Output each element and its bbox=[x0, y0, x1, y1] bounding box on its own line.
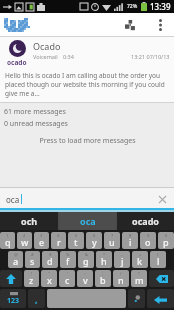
staticText: oca bbox=[6, 194, 20, 205]
button[interactable]: ocado bbox=[117, 212, 174, 230]
staticText: 1 bbox=[6, 233, 9, 238]
staticText: i bbox=[129, 236, 132, 248]
staticText: 3 bbox=[40, 233, 43, 238]
button[interactable]: Emoji bbox=[128, 289, 145, 308]
staticText: 13:39 bbox=[150, 1, 171, 12]
staticText: 2 bbox=[23, 233, 26, 238]
button[interactable]: Symbols bbox=[0, 289, 26, 308]
staticText: 0 unread messages bbox=[4, 119, 68, 129]
button[interactable]: ! bbox=[24, 270, 39, 287]
button[interactable]: Refresh bbox=[120, 15, 140, 35]
staticText: 6 bbox=[93, 233, 96, 238]
button[interactable]: @ bbox=[8, 251, 23, 268]
staticText: s bbox=[30, 255, 35, 267]
button[interactable]: 4 bbox=[51, 232, 66, 249]
button[interactable]: $ bbox=[42, 251, 58, 268]
staticText: $ bbox=[49, 252, 52, 257]
staticText: & bbox=[85, 252, 88, 257]
staticText: c bbox=[65, 274, 70, 286]
staticText: / bbox=[120, 271, 122, 276]
staticText: # bbox=[31, 252, 34, 257]
button[interactable]: oca bbox=[59, 212, 116, 230]
button[interactable]: - bbox=[114, 251, 130, 268]
button[interactable]: Press to load more messages bbox=[0, 136, 174, 146]
button[interactable]: : bbox=[77, 270, 93, 287]
staticText: y bbox=[92, 236, 97, 248]
staticText: 9 bbox=[147, 233, 150, 238]
staticText: , bbox=[35, 293, 38, 305]
staticText: oca bbox=[80, 215, 96, 227]
staticText: p bbox=[163, 236, 169, 248]
staticText: - bbox=[121, 252, 123, 257]
button[interactable]: 6 bbox=[86, 232, 102, 249]
staticText: Ocado bbox=[33, 40, 61, 52]
button[interactable]: / bbox=[113, 270, 129, 287]
staticText: Hello this is ocado I am calling about t… bbox=[5, 71, 169, 98]
staticText: 13:21 07/10/13 bbox=[131, 53, 170, 60]
staticText: ? bbox=[138, 271, 140, 276]
staticText: 4 bbox=[57, 233, 60, 238]
staticText: Press to load more messages bbox=[39, 136, 136, 146]
button[interactable]: + bbox=[132, 251, 148, 268]
button[interactable]: Clear bbox=[156, 193, 168, 205]
staticText: 61 more messages bbox=[4, 107, 66, 117]
button[interactable]: ocado bbox=[0, 37, 174, 103]
staticText: r bbox=[57, 236, 61, 248]
staticText: o bbox=[145, 236, 151, 248]
staticText: ' bbox=[67, 271, 68, 276]
staticText: : bbox=[84, 271, 86, 276]
staticText: 0:34 bbox=[63, 53, 74, 60]
button[interactable]: % bbox=[60, 251, 76, 268]
button[interactable]: 3 bbox=[34, 232, 49, 249]
button[interactable]: Enter bbox=[147, 289, 174, 308]
button[interactable]: # bbox=[25, 251, 40, 268]
button[interactable]: & bbox=[78, 251, 94, 268]
staticText: j bbox=[121, 255, 124, 267]
staticText: l bbox=[157, 255, 160, 267]
button[interactable]: ; bbox=[95, 270, 111, 287]
staticText: n bbox=[118, 274, 124, 286]
staticText: " bbox=[48, 271, 50, 276]
button[interactable]: More options bbox=[150, 15, 170, 35]
staticText: 7 bbox=[111, 233, 114, 238]
staticText: d bbox=[47, 255, 53, 267]
staticText: h bbox=[101, 255, 107, 267]
staticText: ( bbox=[157, 252, 159, 257]
staticText: w bbox=[21, 236, 29, 248]
button[interactable]: 7 bbox=[104, 232, 120, 249]
button[interactable]: 1 bbox=[0, 232, 15, 249]
staticText: ! bbox=[31, 271, 33, 276]
staticText: * bbox=[103, 252, 106, 257]
button[interactable]: * bbox=[96, 251, 112, 268]
staticText: t bbox=[74, 236, 78, 248]
staticText: ; bbox=[102, 271, 104, 276]
staticText: 8 bbox=[129, 233, 132, 238]
button[interactable]: oca bbox=[0, 188, 174, 210]
button[interactable]: Space bbox=[47, 289, 126, 308]
button[interactable]: 9 bbox=[140, 232, 156, 249]
staticText: ocado bbox=[132, 215, 159, 227]
button[interactable]: Delete bbox=[149, 270, 174, 287]
button[interactable]: ( bbox=[150, 251, 166, 268]
staticText: a bbox=[13, 255, 19, 267]
staticText: Voicemail bbox=[33, 53, 58, 60]
staticText: % bbox=[66, 252, 70, 257]
button[interactable]: " bbox=[41, 270, 57, 287]
staticText: + bbox=[139, 252, 142, 257]
button[interactable]: ' bbox=[59, 270, 75, 287]
button[interactable]: 0 bbox=[158, 232, 174, 249]
staticText: m bbox=[135, 274, 144, 286]
button[interactable]: Shift bbox=[0, 270, 22, 287]
button[interactable]: 2 bbox=[17, 232, 32, 249]
staticText: f bbox=[66, 255, 70, 267]
staticText: u bbox=[109, 236, 115, 248]
staticText: @ bbox=[14, 252, 18, 257]
staticText: x bbox=[47, 274, 52, 286]
staticText: q bbox=[5, 236, 11, 248]
staticText: e bbox=[39, 236, 45, 248]
button[interactable]: , bbox=[28, 289, 45, 308]
button[interactable]: 8 bbox=[122, 232, 138, 249]
button[interactable]: 5 bbox=[68, 232, 84, 249]
button[interactable]: ? bbox=[131, 270, 147, 287]
button[interactable]: och bbox=[0, 212, 58, 230]
